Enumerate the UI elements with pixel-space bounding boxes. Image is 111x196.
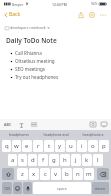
staticText: Try out headphones xyxy=(15,74,59,80)
staticText: c xyxy=(44,170,47,178)
staticText: space xyxy=(57,186,67,191)
staticText: p xyxy=(102,142,106,150)
button[interactable]: y xyxy=(55,140,65,152)
staticText: SEO meetings xyxy=(15,66,46,72)
staticText: headphone a xyxy=(82,132,104,137)
button[interactable]: More options xyxy=(97,9,108,20)
staticText: f xyxy=(42,156,45,164)
staticText: developers notebook xyxy=(10,25,46,30)
staticText: l xyxy=(97,156,99,164)
button[interactable]: q xyxy=(2,140,11,152)
staticText: Back xyxy=(9,11,21,18)
button[interactable]: Hide keyboard xyxy=(99,120,108,129)
staticText: Daily ToDo Note xyxy=(6,36,57,45)
button[interactable]: d xyxy=(28,154,37,166)
button[interactable]: Oltsetkus meeting xyxy=(0,57,111,65)
staticText: u xyxy=(69,142,73,150)
button[interactable]: u xyxy=(66,140,76,152)
button[interactable]: e xyxy=(22,140,32,152)
staticText: t xyxy=(48,142,51,150)
button[interactable]: k xyxy=(82,154,92,166)
button[interactable]: developers notebook xyxy=(4,24,51,31)
staticText: Oltsetkus meeting xyxy=(15,58,55,64)
staticText: x xyxy=(32,170,36,178)
button[interactable]: space xyxy=(33,182,91,194)
button[interactable]: o xyxy=(88,140,98,152)
button[interactable]: z xyxy=(17,168,28,180)
button[interactable]: b xyxy=(62,168,72,180)
staticText: Call Rhianna xyxy=(15,50,42,56)
staticText: o xyxy=(91,142,95,150)
staticText: Beeper xyxy=(12,2,24,7)
button[interactable]: s xyxy=(18,154,27,166)
staticText: y xyxy=(58,142,62,150)
staticText: g xyxy=(52,156,56,164)
staticText: e xyxy=(25,142,29,150)
button[interactable]: headphone a xyxy=(74,130,111,138)
button[interactable]: r xyxy=(33,140,43,152)
button[interactable]: Try out headphones xyxy=(0,73,111,81)
staticText: v xyxy=(54,170,58,178)
button[interactable]: j xyxy=(71,154,81,166)
button[interactable]: t xyxy=(44,140,54,152)
staticText: 12:04 PM xyxy=(52,2,67,7)
button[interactable]: Checklist xyxy=(29,120,38,129)
staticText: z xyxy=(21,170,24,178)
staticText: n xyxy=(76,170,80,178)
button[interactable]: Shift xyxy=(2,168,14,180)
button[interactable]: l xyxy=(93,154,103,166)
staticText: r xyxy=(37,142,40,150)
staticText: k xyxy=(85,156,89,164)
button[interactable]: SEO meetings xyxy=(0,65,111,73)
staticText: a xyxy=(11,156,15,164)
button[interactable]: Back xyxy=(3,9,22,20)
staticText: 94% xyxy=(91,2,98,6)
button[interactable]: Numbers xyxy=(2,182,12,194)
staticText: 123 xyxy=(4,186,10,191)
button[interactable]: g xyxy=(49,154,59,166)
button[interactable]: h xyxy=(60,154,70,166)
button[interactable]: w xyxy=(12,140,21,152)
staticText: ABC xyxy=(4,122,12,127)
staticText: headphone and xyxy=(43,132,69,137)
staticText: return xyxy=(95,186,106,191)
button[interactable]: headphones xyxy=(0,130,37,138)
button[interactable]: ABC xyxy=(3,121,13,128)
staticText: headphones xyxy=(9,132,29,137)
staticText: i xyxy=(81,142,83,150)
button[interactable]: Share xyxy=(75,9,86,20)
staticText: j xyxy=(75,156,77,164)
button[interactable]: return xyxy=(92,182,109,194)
button[interactable]: headphone and xyxy=(37,130,74,138)
button[interactable]: x xyxy=(29,168,39,180)
staticText: w xyxy=(14,142,19,150)
button[interactable]: Emoji xyxy=(13,182,22,194)
button[interactable]: i xyxy=(77,140,87,152)
button[interactable]: Call Rhianna xyxy=(0,49,111,57)
button[interactable]: p xyxy=(99,140,109,152)
button[interactable]: Text format xyxy=(17,121,25,129)
staticText: b xyxy=(65,170,69,178)
button[interactable]: c xyxy=(40,168,50,180)
staticText: m xyxy=(86,170,92,178)
button[interactable]: v xyxy=(51,168,61,180)
button[interactable]: Dictation xyxy=(23,182,32,194)
button[interactable]: Backspace xyxy=(97,168,109,180)
button[interactable]: Compose xyxy=(86,9,97,20)
button[interactable]: f xyxy=(38,154,48,166)
staticText: s xyxy=(21,156,24,164)
staticText: q xyxy=(5,142,9,150)
button[interactable]: m xyxy=(84,168,94,180)
button[interactable]: n xyxy=(73,168,83,180)
button[interactable]: a xyxy=(8,154,17,166)
staticText: h xyxy=(63,156,67,164)
staticText: d xyxy=(31,156,35,164)
button[interactable]: Camera xyxy=(88,120,97,129)
